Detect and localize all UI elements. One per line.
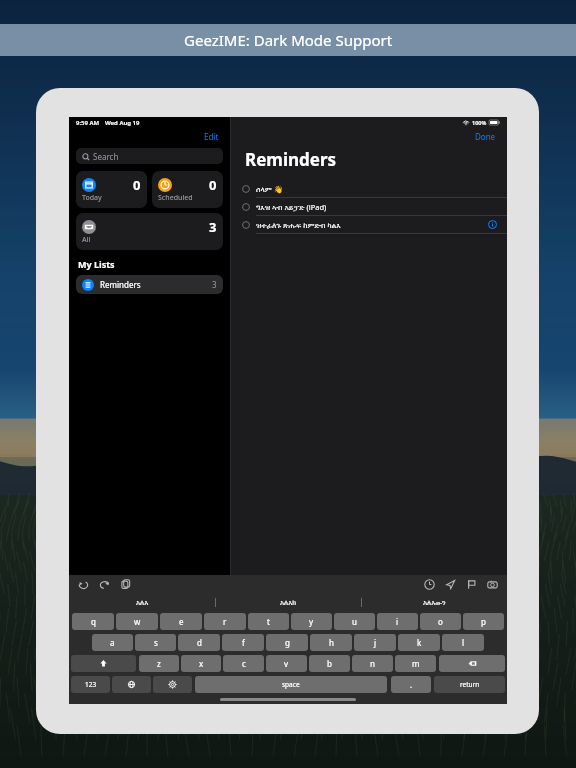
- staticText: Wed Aug 19: [105, 119, 140, 127]
- button[interactable]: space: [195, 676, 387, 693]
- staticText: Reminders: [245, 148, 337, 171]
- button[interactable]: return: [434, 676, 505, 693]
- button[interactable]: f: [222, 634, 264, 651]
- staticText: a: [110, 637, 115, 648]
- button[interactable]: m: [395, 655, 436, 672]
- button[interactable]: ሰላም 👋: [231, 180, 507, 197]
- button[interactable]: q: [72, 613, 114, 630]
- button[interactable]: All reminders: [76, 213, 223, 250]
- staticText: All: [82, 235, 91, 245]
- button[interactable]: Paste: [119, 578, 132, 591]
- button[interactable]: g: [266, 634, 308, 651]
- button[interactable]: 123: [71, 676, 110, 693]
- button[interactable]: .: [391, 676, 431, 693]
- button[interactable]: r: [204, 613, 246, 630]
- staticText: Done: [475, 131, 496, 142]
- button[interactable]: Keyboard settings: [153, 676, 192, 693]
- button[interactable]: Redo: [98, 578, 111, 591]
- staticText: w: [134, 616, 141, 627]
- button[interactable]: ግእዝ ኣብ አይፓድ (iPad): [231, 198, 507, 215]
- staticText: c: [242, 658, 246, 669]
- button[interactable]: d: [178, 634, 220, 651]
- button[interactable]: l: [442, 634, 484, 651]
- button[interactable]: አለእክ: [216, 594, 361, 610]
- button[interactable]: w: [116, 613, 158, 630]
- button[interactable]: Camera: [486, 578, 499, 591]
- staticText: 123: [85, 680, 97, 689]
- staticText: x: [199, 658, 204, 669]
- button[interactable]: Change keyboard: [112, 676, 151, 693]
- other: Reminders list: [82, 279, 94, 291]
- staticText: ዝተፊለጉ ጽሑፍ ከምድብ ካልእ: [256, 220, 341, 230]
- button[interactable]: ዝተፊለጉ ጽሑፍ ከምድብ ካልእ: [231, 216, 507, 233]
- staticText: 3: [212, 279, 217, 290]
- button[interactable]: x: [181, 655, 221, 672]
- button[interactable]: p: [463, 613, 504, 630]
- staticText: 0: [209, 176, 217, 194]
- button[interactable]: Recent: [423, 578, 436, 591]
- staticText: My Lists: [78, 258, 115, 270]
- button[interactable]: አለእ: [69, 594, 215, 610]
- button[interactable]: v: [266, 655, 307, 672]
- staticText: m: [412, 658, 420, 669]
- button[interactable]: h: [310, 634, 352, 651]
- staticText: 100%: [472, 119, 487, 126]
- button[interactable]: Done: [473, 130, 498, 143]
- button[interactable]: Search: [76, 148, 223, 164]
- staticText: space: [282, 680, 300, 689]
- staticText: 3: [209, 218, 217, 236]
- staticText: f: [242, 637, 245, 648]
- staticText: b: [327, 658, 332, 669]
- button[interactable]: j: [354, 634, 396, 651]
- button[interactable]: a: [92, 634, 133, 651]
- button[interactable]: Today: [76, 171, 147, 208]
- button[interactable]: b: [309, 655, 350, 672]
- staticText: Today: [82, 193, 102, 203]
- staticText: o: [438, 616, 443, 627]
- staticText: d: [197, 637, 202, 648]
- button[interactable]: c: [223, 655, 264, 672]
- staticText: አለእውን: [423, 599, 446, 606]
- other: Details: [488, 220, 497, 229]
- other: All reminders: [82, 220, 96, 234]
- button[interactable]: s: [135, 634, 176, 651]
- staticText: y: [309, 616, 314, 627]
- staticText: .: [410, 679, 413, 690]
- staticText: j: [374, 637, 377, 648]
- button[interactable]: Shift: [71, 655, 136, 672]
- staticText: l: [462, 637, 465, 648]
- staticText: g: [285, 637, 290, 648]
- staticText: q: [91, 616, 96, 627]
- staticText: p: [481, 616, 486, 627]
- button[interactable]: n: [352, 655, 393, 672]
- button[interactable]: Send: [444, 578, 457, 591]
- button[interactable]: Scheduled: [152, 171, 223, 208]
- staticText: n: [370, 658, 375, 669]
- button[interactable]: Undo: [77, 578, 90, 591]
- button[interactable]: Reminders list: [76, 275, 223, 294]
- button[interactable]: t: [248, 613, 289, 630]
- staticText: Reminders: [100, 279, 141, 290]
- other: Today: [82, 178, 96, 192]
- button[interactable]: o: [420, 613, 461, 630]
- staticText: 9:59 AM: [76, 119, 100, 127]
- other: Scheduled: [158, 178, 172, 192]
- staticText: i: [396, 616, 399, 627]
- staticText: u: [352, 616, 357, 627]
- button[interactable]: Backspace: [439, 655, 505, 672]
- staticText: r: [223, 616, 227, 627]
- staticText: ግእዝ ኣብ አይፓድ (iPad): [256, 202, 327, 212]
- staticText: Scheduled: [158, 193, 193, 203]
- button[interactable]: k: [398, 634, 440, 651]
- button[interactable]: Flag: [465, 578, 478, 591]
- staticText: v: [284, 658, 289, 669]
- staticText: GeezIME: Dark Mode Support: [184, 30, 393, 50]
- button[interactable]: z: [139, 655, 179, 672]
- button[interactable]: Edit: [202, 130, 221, 143]
- button[interactable]: u: [334, 613, 375, 630]
- button[interactable]: አለእውን: [362, 594, 507, 610]
- button[interactable]: i: [377, 613, 418, 630]
- staticText: አለእክ: [280, 599, 297, 606]
- button[interactable]: y: [291, 613, 332, 630]
- button[interactable]: e: [160, 613, 202, 630]
